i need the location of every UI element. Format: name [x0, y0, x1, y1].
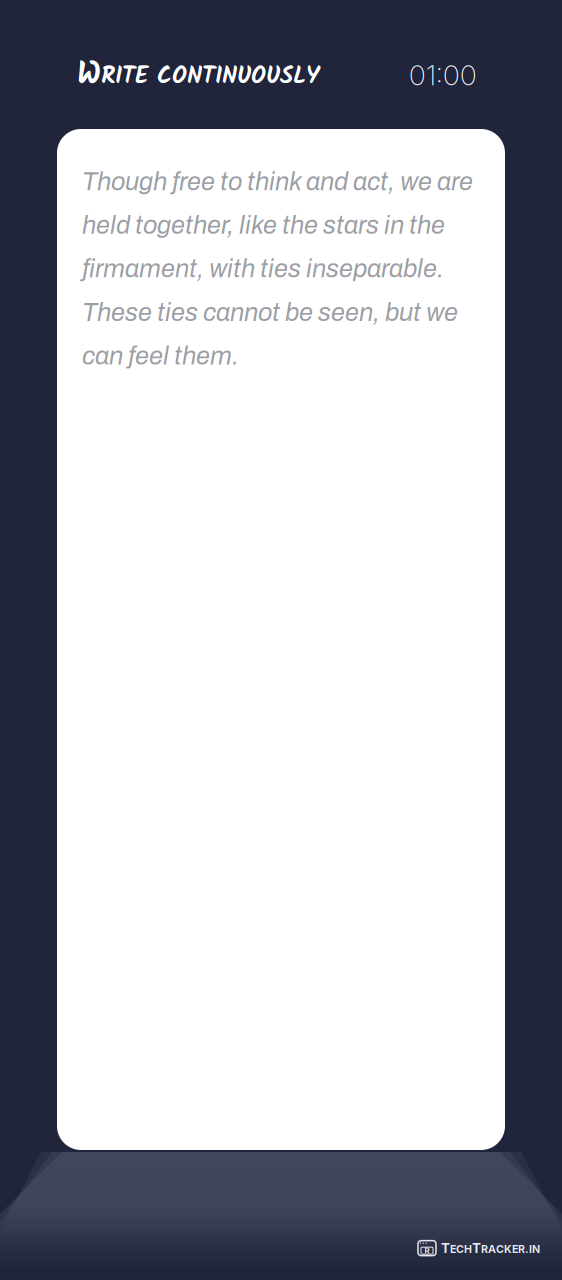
staticText: can feel them.	[82, 342, 239, 370]
staticText: held together, like the stars in the	[82, 212, 445, 239]
staticText: R	[424, 1246, 429, 1255]
button[interactable]: 01:00	[409, 58, 477, 92]
staticText: firmament, with ties inseparable.	[82, 255, 444, 283]
staticText: These ties cannot be seen, but we	[82, 299, 458, 326]
button[interactable]: WRITE CONTINUOUSLY	[77, 51, 319, 99]
staticText: WRITE CONTINUOUSLY	[77, 51, 319, 99]
staticText: TECHTRACKER.IN	[441, 1240, 540, 1256]
button[interactable]: Writing area	[57, 129, 505, 1150]
staticText: Though free to think and act, we are	[82, 168, 473, 196]
staticText: 01:00	[409, 58, 477, 92]
